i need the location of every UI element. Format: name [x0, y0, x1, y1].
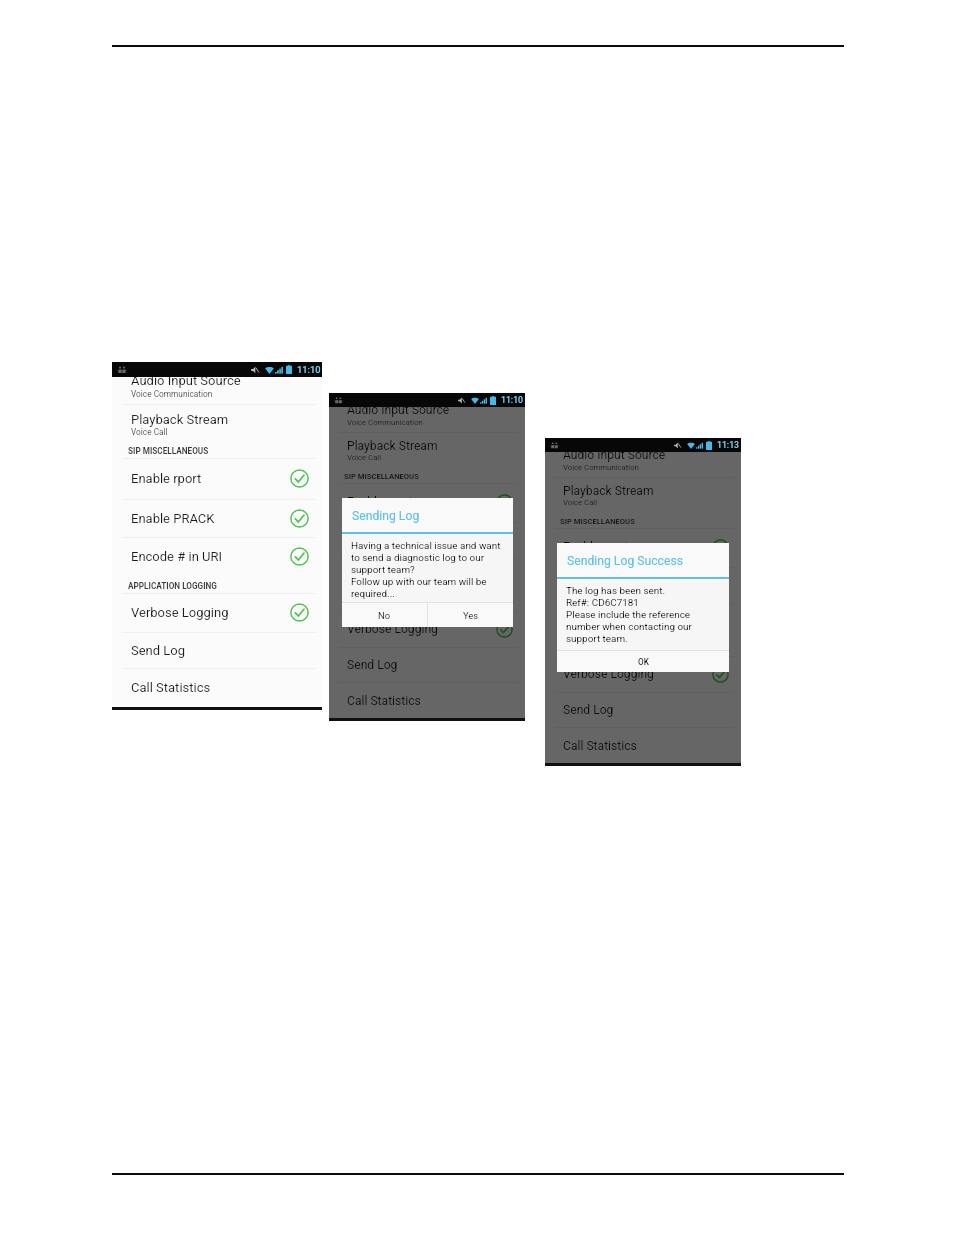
staticText: SIP MISCELLANEOUS — [344, 472, 419, 481]
staticText: Encode # in URI — [563, 614, 648, 628]
staticText: Enable rport — [563, 540, 629, 554]
button[interactable]: Call Statistics — [545, 727, 741, 763]
other: Enabled — [290, 547, 309, 566]
button[interactable]: Send Log — [112, 632, 322, 669]
button[interactable]: Yes — [428, 603, 513, 627]
staticText: Voice Communication — [131, 389, 213, 399]
staticText: Sending Log — [352, 509, 420, 523]
button[interactable]: Call Statistics — [112, 668, 322, 707]
button[interactable]: Encode # in URI — [545, 603, 741, 639]
button[interactable]: Enable PRACK — [329, 522, 525, 558]
staticText: SIP MISCELLANEOUS — [128, 446, 209, 456]
staticText: Audio Input Source — [131, 377, 241, 388]
button[interactable]: Audio Input Source — [545, 452, 741, 477]
staticText: Verbose Logging — [563, 667, 654, 681]
staticText: Send Log — [131, 643, 186, 658]
staticText: Send Log — [347, 658, 398, 672]
button[interactable]: Playback Stream — [545, 477, 741, 515]
staticText: Playback Stream — [347, 439, 438, 453]
staticText: Audio Input Source — [563, 452, 666, 462]
button[interactable]: Audio Input Source — [329, 407, 525, 432]
staticText: No — [378, 610, 391, 621]
other: Enabled — [712, 666, 729, 683]
button[interactable]: Enable PRACK — [112, 499, 322, 537]
staticText: Enable PRACK — [563, 578, 641, 592]
button[interactable]: Enable rport — [329, 483, 525, 521]
button[interactable]: Call Statistics — [329, 682, 525, 718]
button[interactable]: Send Log — [329, 647, 525, 682]
button[interactable]: Verbose Logging — [329, 611, 525, 647]
staticText: Yes — [463, 610, 479, 621]
button[interactable]: Enable PRACK — [545, 567, 741, 603]
other: Enabled — [496, 621, 513, 638]
staticText: 11:13 — [717, 440, 740, 450]
staticText: Enable PRACK — [347, 533, 425, 547]
staticText: 11:10 — [297, 364, 321, 375]
button[interactable]: Enable rport — [112, 458, 322, 499]
staticText: Call Statistics — [131, 680, 211, 695]
staticText: APPLICATION LOGGING — [344, 600, 427, 609]
button[interactable]: Verbose Logging — [545, 656, 741, 692]
staticText: Verbose Logging — [131, 605, 229, 620]
staticText: Having a technical issue and want to sen… — [351, 540, 501, 600]
staticText: Voice Communication — [563, 463, 639, 472]
staticText: Voice Communication — [347, 418, 423, 427]
staticText: The log has been sent. Ref#: CD6C7181 Pl… — [566, 585, 692, 645]
staticText: 11:10 — [501, 395, 524, 405]
staticText: Audio Input Source — [347, 407, 450, 417]
button[interactable]: Encode # in URI — [329, 558, 525, 594]
staticText: Verbose Logging — [347, 622, 438, 636]
staticText: Sending Log Success — [567, 554, 684, 568]
staticText: Enable PRACK — [131, 511, 215, 526]
button[interactable]: Enable rport — [545, 528, 741, 566]
staticText: APPLICATION LOGGING — [560, 645, 643, 654]
staticText: SIP MISCELLANEOUS — [560, 517, 635, 526]
other: Enabled — [290, 603, 309, 622]
staticText: Voice Call — [347, 453, 382, 462]
staticText: Enable rport — [347, 495, 413, 509]
staticText: Encode # in URI — [347, 569, 432, 583]
other: Enabled — [290, 509, 309, 528]
button[interactable]: OK — [557, 651, 729, 672]
button[interactable]: Playback Stream — [329, 432, 525, 470]
staticText: APPLICATION LOGGING — [128, 581, 217, 591]
staticText: Playback Stream — [131, 412, 229, 427]
other: Enabled — [712, 539, 729, 556]
button[interactable]: Verbose Logging — [112, 593, 322, 631]
button[interactable]: Send Log — [545, 692, 741, 727]
staticText: Voice Call — [563, 498, 598, 507]
staticText: Playback Stream — [563, 484, 654, 498]
button[interactable]: Playback Stream — [112, 404, 322, 444]
staticText: OK — [638, 657, 649, 667]
other: Enabled — [496, 532, 513, 549]
staticText: Enable rport — [131, 471, 202, 486]
other: Enabled — [290, 469, 309, 488]
other: Enabled — [496, 494, 513, 511]
button[interactable]: Encode # in URI — [112, 537, 322, 575]
staticText: Send Log — [563, 703, 614, 717]
button[interactable]: Audio Input Source — [112, 377, 322, 404]
staticText: Voice Call — [131, 427, 168, 437]
staticText: Call Statistics — [347, 694, 421, 708]
button[interactable]: No — [342, 603, 427, 627]
staticText: Encode # in URI — [131, 549, 223, 564]
other: Enabled — [712, 577, 729, 594]
staticText: Call Statistics — [563, 739, 637, 753]
